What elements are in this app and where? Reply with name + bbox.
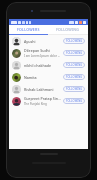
staticText: The Punjabi King — [24, 102, 47, 106]
button[interactable]: FOLLOWING — [63, 62, 85, 68]
staticText: Dileepan Sudhi — [24, 48, 50, 53]
button[interactable]: FOLLOWING — [63, 86, 85, 92]
button[interactable]: FOLLOWERS — [9, 25, 48, 34]
staticText: FOLLOWING — [66, 63, 83, 67]
button[interactable]: FOLLOWING — [48, 25, 88, 34]
staticText: FOLLOWING — [56, 27, 80, 32]
button[interactable]: FOLLOWING — [63, 38, 85, 44]
staticText: FOLLOWING — [66, 51, 83, 55]
staticText: I am Lorem Ipsum dolor sit amet — [24, 54, 61, 58]
button[interactable]: FOLLOWING — [63, 50, 85, 56]
staticText: FOLLOWING — [66, 99, 83, 103]
staticText: Ayushi — [24, 39, 36, 44]
button[interactable]: Dileepan Sudhi — [9, 47, 88, 59]
button[interactable]: nikhil chakhade — [9, 59, 88, 71]
staticText: Gurpreet Pratap Singh — [24, 96, 61, 101]
staticText: Rishab Lakhmani — [24, 87, 54, 92]
staticText: FOLLOWERS — [17, 27, 40, 32]
staticText: FOLLOWING — [66, 39, 83, 43]
staticText: Namita — [24, 75, 37, 80]
button[interactable]: FOLLOWING — [63, 74, 85, 80]
button[interactable]: Rishab Lakhmani — [9, 83, 88, 95]
staticText: FOLLOWING — [66, 87, 83, 91]
staticText: FOLLOWING — [66, 75, 83, 79]
button[interactable]: Gurpreet Pratap Singh — [9, 95, 88, 107]
button[interactable]: Namita — [9, 71, 88, 83]
button[interactable]: Ayushi — [9, 35, 88, 47]
staticText: nikhil chakhade — [24, 63, 52, 68]
button[interactable]: FOLLOWING — [63, 98, 85, 104]
